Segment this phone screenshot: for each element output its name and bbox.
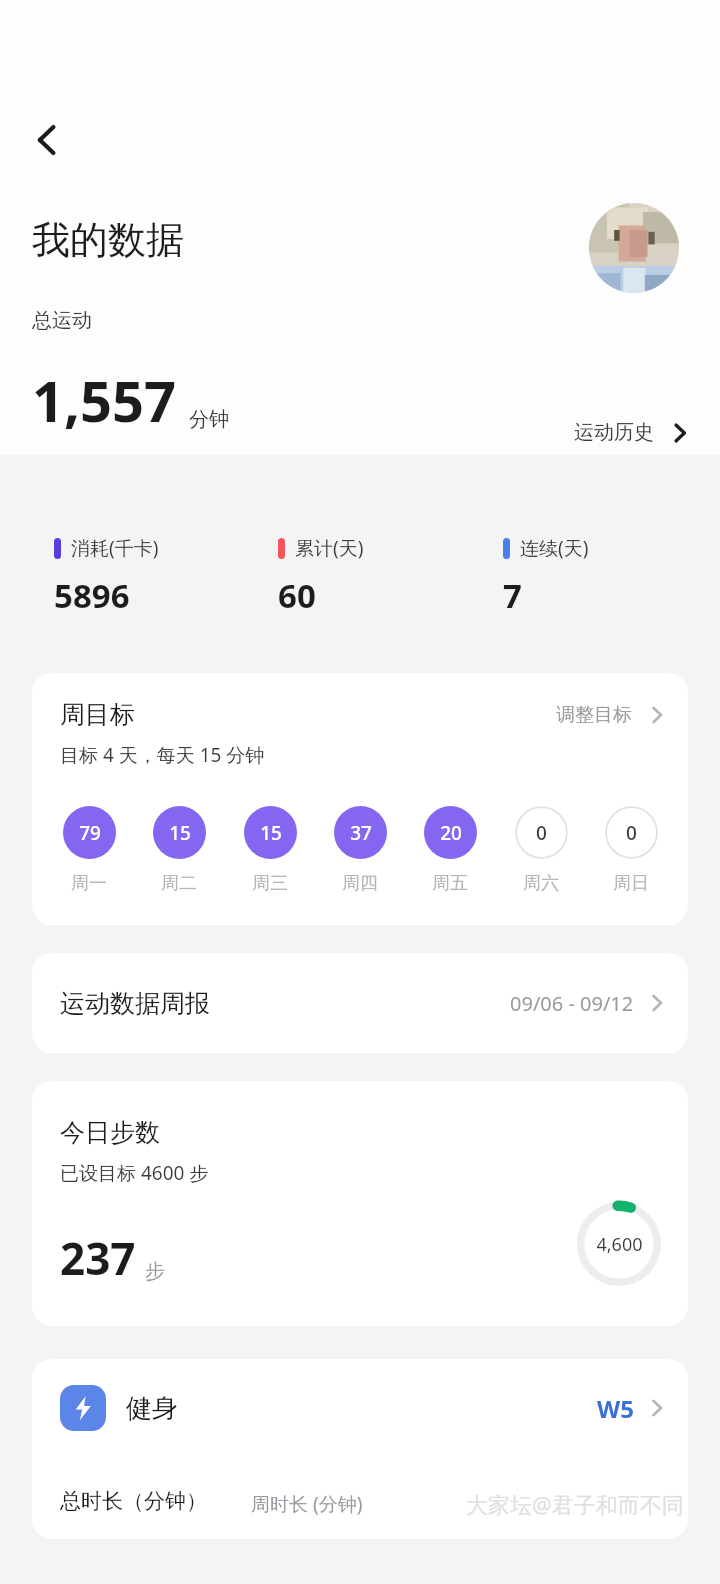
staticText: 周一 <box>71 872 107 895</box>
staticText: 15 <box>260 820 282 846</box>
staticText: 周四 <box>342 872 378 895</box>
button[interactable]: 健身 <box>32 1359 688 1539</box>
button[interactable]: 15 <box>231 806 309 895</box>
staticText: 周日 <box>613 872 649 895</box>
button[interactable]: 今日步数 <box>32 1081 688 1326</box>
button[interactable]: Back <box>20 112 76 168</box>
button[interactable]: 运动数据周报 <box>32 953 688 1053</box>
button[interactable]: 0 <box>592 806 670 895</box>
staticText: 周时长 (分钟) <box>251 1491 363 1517</box>
staticText: 我的数据 <box>32 216 184 264</box>
staticText: 目标 4 天，每天 15 分钟 <box>60 742 265 768</box>
staticText: 大家坛@君子和而不同 <box>466 1489 684 1519</box>
staticText: 调整目标 <box>556 703 632 727</box>
staticText: 健身 <box>126 1392 178 1425</box>
button[interactable]: 79 <box>50 806 128 895</box>
staticText: 79 <box>79 820 101 846</box>
staticText: 消耗(千卡) <box>71 535 159 561</box>
staticText: 运动历史 <box>574 420 654 445</box>
staticText: 分钟 <box>189 407 229 432</box>
staticText: 0 <box>536 820 547 846</box>
staticText: 周六 <box>523 872 559 895</box>
staticText: 步 <box>145 1259 165 1284</box>
staticText: 237 <box>60 1228 136 1288</box>
staticText: 已设目标 4600 步 <box>60 1160 209 1186</box>
staticText: 0 <box>626 820 637 846</box>
button[interactable]: 周目标 <box>32 673 688 925</box>
staticText: 周三 <box>252 872 288 895</box>
button[interactable]: 15 <box>140 806 218 895</box>
staticText: 周五 <box>432 872 468 895</box>
staticText: W5 <box>597 1392 634 1425</box>
button[interactable]: 累计(天) <box>256 497 463 644</box>
button[interactable]: 37 <box>321 806 399 895</box>
button[interactable]: 0 <box>502 806 580 895</box>
staticText: 60 <box>278 573 316 618</box>
staticText: 5896 <box>54 573 130 618</box>
staticText: 1,557 <box>32 362 177 438</box>
staticText: 20 <box>440 820 462 846</box>
button[interactable]: 消耗(千卡) <box>32 497 238 644</box>
button[interactable]: 连续(天) <box>481 497 688 644</box>
button[interactable]: Profile <box>589 203 679 293</box>
staticText: 4,600 <box>596 1232 643 1257</box>
staticText: 总运动 <box>32 308 92 333</box>
staticText: 37 <box>350 820 372 846</box>
staticText: 连续(天) <box>520 535 589 561</box>
staticText: 09/06 - 09/12 <box>510 990 634 1017</box>
staticText: 总时长（分钟） <box>60 1488 207 1514</box>
staticText: 周目标 <box>60 699 135 730</box>
button[interactable]: 运动历史 <box>568 414 696 451</box>
staticText: 15 <box>169 820 191 846</box>
staticText: 今日步数 <box>60 1117 160 1148</box>
staticText: 周二 <box>161 872 197 895</box>
staticText: 累计(天) <box>295 535 364 561</box>
staticText: 运动数据周报 <box>60 988 210 1019</box>
button[interactable]: 20 <box>411 806 489 895</box>
staticText: 7 <box>503 573 522 618</box>
